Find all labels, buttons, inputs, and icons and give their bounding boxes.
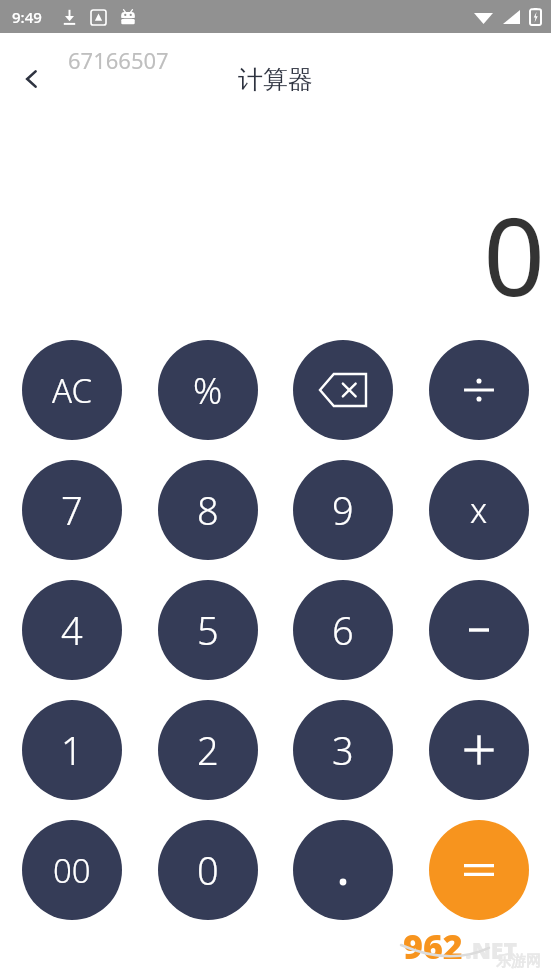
- staticText: 9:49: [12, 7, 42, 27]
- staticText: x: [470, 487, 488, 533]
- button[interactable]: Multiply: [429, 460, 529, 560]
- staticText: 6: [332, 604, 354, 656]
- button[interactable]: 8: [158, 460, 258, 560]
- button[interactable]: 2: [158, 700, 258, 800]
- button[interactable]: Equals: [429, 820, 529, 920]
- button[interactable]: 5: [158, 580, 258, 680]
- staticText: 7: [61, 484, 83, 536]
- staticText: 乐游网: [496, 952, 541, 971]
- button[interactable]: 0: [158, 820, 258, 920]
- button[interactable]: 1: [22, 700, 122, 800]
- staticText: 00: [53, 848, 91, 893]
- staticText: 4: [61, 604, 83, 656]
- button[interactable]: Back: [10, 57, 54, 101]
- staticText: 2: [197, 724, 219, 776]
- button[interactable]: 9: [293, 460, 393, 560]
- button[interactable]: %: [158, 340, 258, 440]
- staticText: 67166507: [68, 45, 169, 75]
- staticText: .NET: [465, 934, 518, 965]
- staticText: 计算器: [238, 64, 313, 95]
- staticText: 5: [197, 604, 219, 656]
- button[interactable]: 7: [22, 460, 122, 560]
- staticText: 3: [332, 724, 354, 776]
- button[interactable]: Minus: [429, 580, 529, 680]
- staticText: 1: [61, 724, 83, 776]
- button[interactable]: Decimal point: [293, 820, 393, 920]
- staticText: 0: [197, 844, 219, 896]
- staticText: AC: [52, 368, 92, 413]
- button[interactable]: 00: [22, 820, 122, 920]
- button[interactable]: Divide: [429, 340, 529, 440]
- button[interactable]: 3: [293, 700, 393, 800]
- button[interactable]: 4: [22, 580, 122, 680]
- button[interactable]: Plus: [429, 700, 529, 800]
- button[interactable]: 6: [293, 580, 393, 680]
- staticText: 962: [403, 923, 463, 969]
- staticText: 9: [332, 484, 354, 536]
- button[interactable]: Backspace: [293, 340, 393, 440]
- staticText: 0: [483, 181, 545, 328]
- staticText: 8: [197, 484, 219, 536]
- staticText: %: [193, 366, 223, 415]
- button[interactable]: AC: [22, 340, 122, 440]
